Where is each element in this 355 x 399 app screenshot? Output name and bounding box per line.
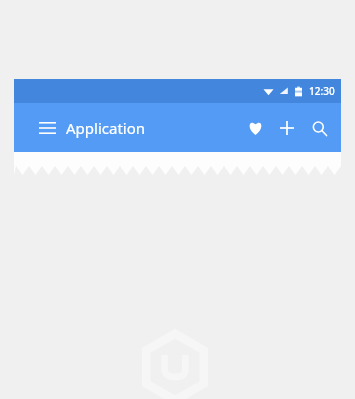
button[interactable]: Search <box>303 112 335 144</box>
button[interactable]: Open navigation menu <box>32 113 62 143</box>
button[interactable]: Favorite <box>239 112 271 144</box>
button[interactable]: Add <box>271 112 303 144</box>
staticText: 12:30 <box>309 84 335 98</box>
staticText: Application <box>66 118 146 138</box>
